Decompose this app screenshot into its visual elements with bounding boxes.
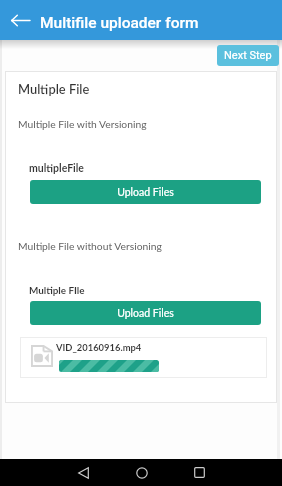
staticText: Multiple File [18, 81, 90, 96]
staticText: Multiple File without Versioning [18, 240, 162, 252]
staticText: Next Step [224, 49, 272, 62]
button[interactable]: Back [0, 0, 40, 40]
button[interactable]: VID_20160916.mp4 [20, 337, 267, 378]
staticText: Multiple File with Versioning [18, 118, 147, 130]
button[interactable]: Next Step [217, 45, 279, 66]
button[interactable]: Home [128, 459, 155, 486]
button[interactable]: Upload Files [30, 301, 261, 325]
staticText: Multifile uploader form [40, 14, 199, 32]
staticText: multipleFile [29, 162, 84, 175]
button[interactable]: Recent apps [186, 459, 213, 486]
button[interactable]: Back [70, 459, 97, 486]
staticText: Multiple FIle [29, 284, 85, 296]
button[interactable]: Upload Files [30, 180, 261, 204]
staticText: Upload Files [117, 186, 174, 199]
staticText: Upload Files [117, 307, 174, 320]
staticText: VID_20160916.mp4 [56, 342, 142, 353]
